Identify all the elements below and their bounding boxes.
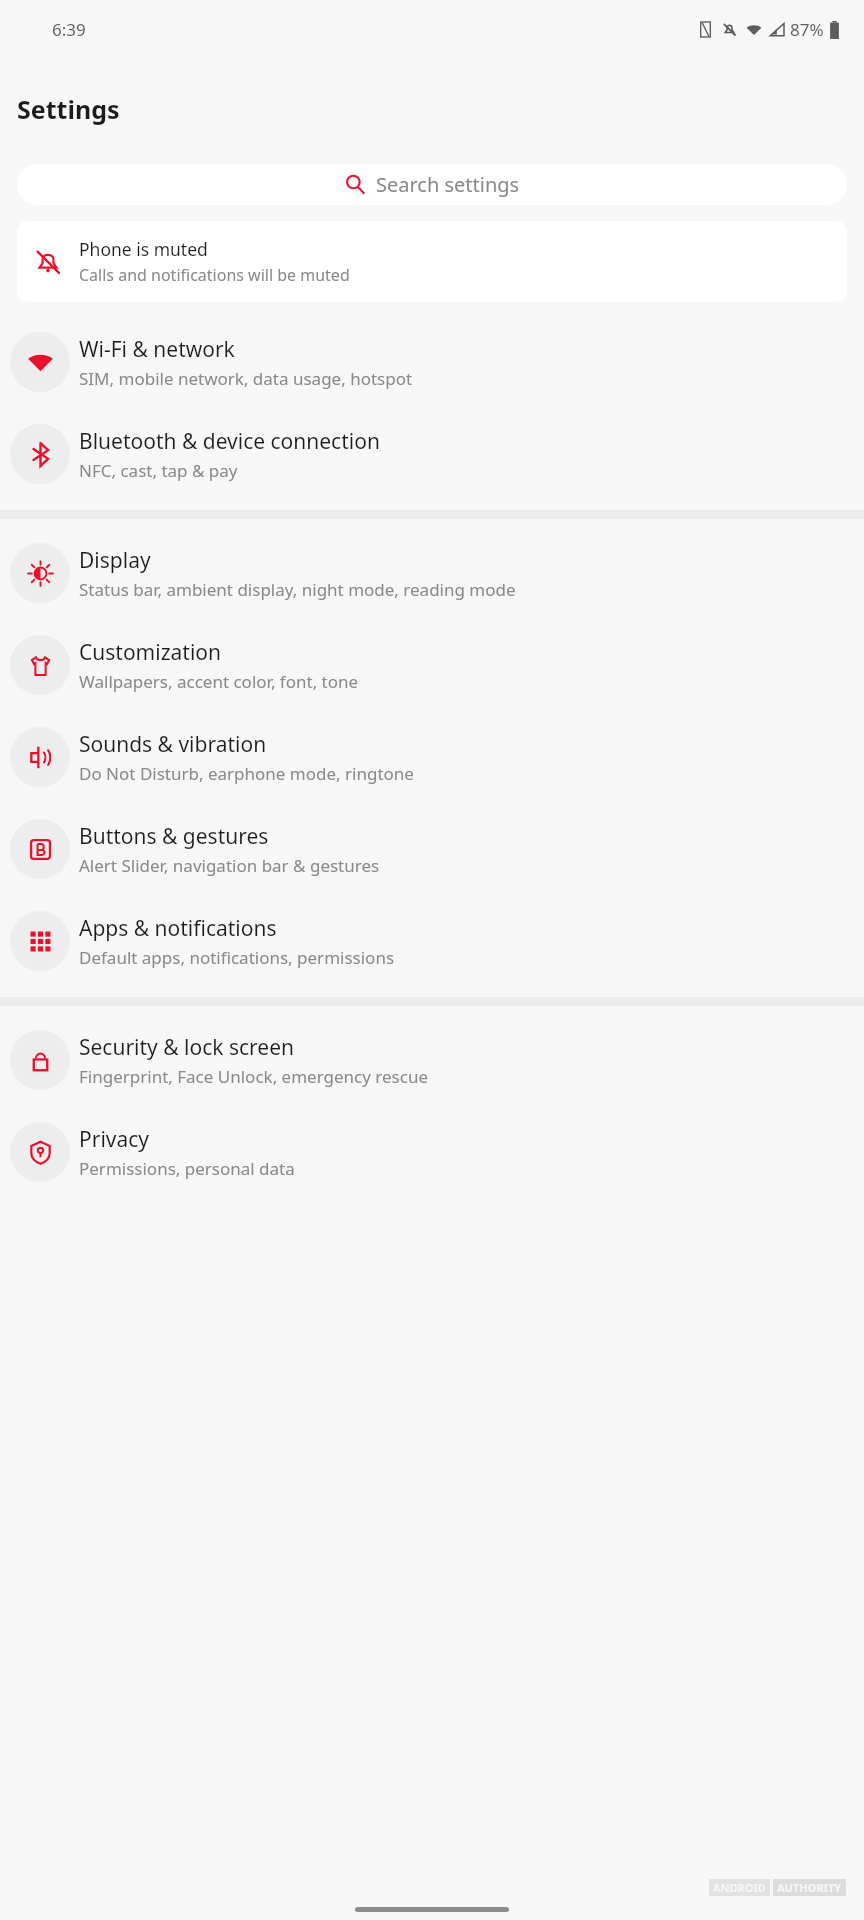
staticText: Bluetooth & device connection [79, 427, 380, 456]
other: Battery [829, 21, 840, 39]
button[interactable]: Apps & notifications [0, 895, 864, 987]
staticText: Default apps, notifications, permissions [79, 946, 395, 969]
button[interactable]: Security & lock screen [0, 1014, 864, 1106]
button[interactable]: Privacy [0, 1106, 864, 1198]
staticText: Customization [79, 638, 221, 667]
staticText: 6:39 [52, 18, 86, 41]
other: Silent [722, 22, 737, 37]
other: Signal [769, 22, 784, 37]
staticText: Buttons & gestures [79, 822, 269, 851]
staticText: Display [79, 546, 151, 575]
other: NFC [698, 22, 713, 37]
staticText: Do Not Disturb, earphone mode, ringtone [79, 762, 414, 785]
staticText: Wallpapers, accent color, font, tone [79, 670, 359, 693]
staticText: Calls and notifications will be muted [79, 264, 350, 286]
staticText: Alert Slider, navigation bar & gestures [79, 854, 380, 877]
staticText: AUTHORITY [777, 1880, 842, 1895]
staticText: 87% [790, 18, 824, 41]
other: Wi-Fi [746, 22, 762, 38]
staticText: Permissions, personal data [79, 1157, 295, 1180]
staticText: Phone is muted [79, 237, 208, 261]
button[interactable]: Sounds & vibration [0, 711, 864, 803]
button[interactable]: Bluetooth & device connection [0, 408, 864, 500]
staticText: Status bar, ambient display, night mode,… [79, 578, 516, 601]
button[interactable]: Customization [0, 619, 864, 711]
button[interactable]: Phone is muted [17, 221, 847, 302]
button[interactable]: Search settings [17, 164, 847, 205]
staticText: SIM, mobile network, data usage, hotspot [79, 367, 413, 390]
staticText: Search settings [376, 171, 520, 198]
button[interactable]: Display [0, 527, 864, 619]
staticText: Wi-Fi & network [79, 335, 235, 364]
staticText: Privacy [79, 1125, 150, 1154]
staticText: Apps & notifications [79, 914, 277, 943]
staticText: NFC, cast, tap & pay [79, 459, 238, 482]
staticText: Fingerprint, Face Unlock, emergency resc… [79, 1065, 428, 1088]
staticText: Sounds & vibration [79, 730, 267, 759]
button[interactable]: Wi-Fi & network [0, 316, 864, 408]
button[interactable]: Buttons & gestures [0, 803, 864, 895]
staticText: ANDROID [713, 1880, 766, 1895]
staticText: Security & lock screen [79, 1033, 295, 1062]
staticText: Settings [17, 92, 120, 126]
